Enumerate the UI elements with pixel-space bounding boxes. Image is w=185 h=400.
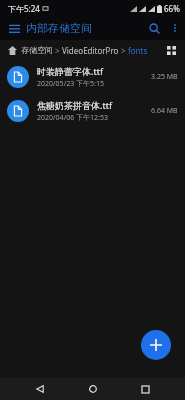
staticText: 66% [164, 3, 180, 14]
button[interactable]: fonts [128, 45, 148, 56]
button[interactable]: Home [80, 378, 106, 400]
staticText: 3.25 MB [151, 72, 178, 82]
button[interactable]: Menu [4, 18, 24, 38]
button[interactable]: Add [141, 330, 171, 360]
staticText: 时装静蕾字体.ttf [37, 65, 104, 77]
button[interactable]: 时装静蕾字体.ttf [0, 60, 185, 94]
button[interactable]: Search [143, 17, 165, 39]
staticText: > [119, 45, 128, 56]
staticText: 内部存储空间 [26, 21, 92, 35]
button[interactable]: VideoEditorPro [62, 45, 119, 56]
staticText: 6.64 MB [151, 106, 178, 116]
button[interactable]: Back [27, 378, 53, 400]
staticText: > [53, 45, 62, 56]
staticText: 2020/05/23 下午5:15 [37, 79, 104, 89]
staticText: 焦糖奶茶拼音体.ttf [37, 99, 113, 111]
staticText: 2020/04/06 下午12:53 [37, 113, 108, 123]
button[interactable]: 存储空间 [21, 45, 53, 55]
button[interactable]: Grid view [163, 42, 179, 58]
button[interactable]: Recents [132, 378, 158, 400]
button[interactable]: More options [165, 18, 185, 38]
staticText: 下午5:24 [8, 3, 40, 14]
button[interactable]: Home [6, 44, 19, 57]
button[interactable]: 焦糖奶茶拼音体.ttf [0, 94, 185, 128]
